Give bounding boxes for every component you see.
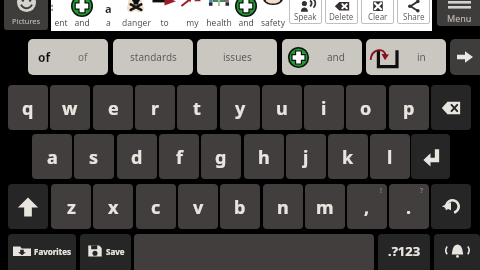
- staticText: b: [234, 195, 246, 220]
- button[interactable]: and: [229, 0, 263, 31]
- button[interactable]: j: [286, 134, 326, 179]
- button[interactable]: r: [135, 85, 175, 130]
- button[interactable]: x: [93, 184, 133, 229]
- button[interactable]: ,: [347, 184, 387, 229]
- staticText: x: [108, 195, 119, 220]
- staticText: of: [78, 50, 88, 64]
- staticText: and: [327, 50, 345, 64]
- staticText: ?: [420, 186, 424, 196]
- button[interactable]: Pictures: [4, 0, 48, 30]
- staticText: safety: [261, 17, 285, 29]
- staticText: i: [321, 96, 327, 121]
- button[interactable]: s: [74, 134, 114, 179]
- button[interactable]: p: [389, 85, 429, 130]
- button[interactable]: k: [328, 134, 368, 179]
- button[interactable]: More predictions: [450, 39, 480, 75]
- staticText: ,: [364, 195, 370, 220]
- button[interactable]: and: [282, 39, 362, 75]
- staticText: v: [193, 195, 204, 220]
- staticText: f: [176, 145, 183, 170]
- button[interactable]: h: [244, 134, 284, 179]
- button[interactable]: Favorites: [8, 234, 76, 270]
- staticText: of: [38, 49, 51, 65]
- staticText: e: [108, 96, 119, 121]
- button[interactable]: .?123: [378, 234, 430, 270]
- staticText: Menu: [447, 12, 472, 24]
- staticText: m: [316, 195, 334, 220]
- staticText: Save: [106, 246, 125, 257]
- button[interactable]: and: [65, 0, 99, 31]
- button[interactable]: standards: [113, 39, 193, 75]
- button[interactable]: t: [177, 85, 217, 130]
- button[interactable]: a: [32, 134, 72, 179]
- button[interactable]: m: [305, 184, 345, 229]
- staticText: Favorites: [34, 246, 71, 257]
- button[interactable]: a: [95, 0, 121, 31]
- button[interactable]: z: [51, 184, 91, 229]
- button[interactable]: u: [262, 85, 302, 130]
- staticText: .: [406, 195, 412, 220]
- staticText: l: [387, 145, 393, 170]
- button[interactable]: health: [202, 0, 236, 31]
- button[interactable]: Share: [397, 0, 430, 24]
- button[interactable]: n: [263, 184, 303, 229]
- staticText: g: [215, 145, 227, 170]
- button[interactable]: f: [159, 134, 199, 179]
- staticText: r: [151, 96, 160, 121]
- staticText: and: [238, 17, 254, 29]
- button[interactable]: o: [346, 85, 386, 130]
- button[interactable]: safety: [256, 0, 290, 31]
- staticText: y: [235, 96, 246, 121]
- button[interactable]: in: [366, 39, 446, 75]
- staticText: p: [403, 96, 415, 121]
- staticText: h: [258, 145, 270, 170]
- button[interactable]: w: [50, 85, 90, 130]
- button[interactable]: Delete: [325, 0, 358, 24]
- button[interactable]: to: [147, 0, 181, 31]
- button[interactable]: g: [201, 134, 241, 179]
- staticText: q: [22, 96, 34, 121]
- button[interactable]: q: [8, 85, 48, 130]
- staticText: d: [131, 145, 143, 170]
- button[interactable]: i: [304, 85, 344, 130]
- button[interactable]: my: [175, 0, 209, 31]
- button[interactable]: e: [93, 85, 133, 130]
- button[interactable]: y: [220, 85, 260, 130]
- button[interactable]: d: [117, 134, 157, 179]
- staticText: Clear: [368, 11, 388, 22]
- staticText: danger: [122, 17, 151, 29]
- staticText: a: [105, 1, 112, 16]
- button[interactable]: ent: [44, 0, 78, 31]
- staticText: in: [417, 50, 426, 64]
- staticText: !: [380, 186, 382, 196]
- button[interactable]: issues: [197, 39, 277, 75]
- button[interactable]: Clear: [361, 0, 394, 24]
- button[interactable]: Sound: [434, 234, 480, 270]
- staticText: c: [151, 195, 161, 220]
- button[interactable]: Menu: [437, 0, 480, 26]
- staticText: s: [89, 145, 99, 170]
- button[interactable]: of: [28, 39, 108, 75]
- button[interactable]: Speak: [289, 0, 322, 24]
- staticText: Delete: [329, 11, 354, 22]
- button[interactable]: Save: [80, 234, 131, 270]
- button[interactable]: l: [370, 134, 410, 179]
- staticText: u: [276, 96, 288, 121]
- button[interactable]: c: [136, 184, 176, 229]
- button[interactable]: .: [389, 184, 429, 229]
- staticText: health: [206, 17, 232, 29]
- staticText: t: [193, 96, 201, 121]
- staticText: Share: [403, 11, 425, 22]
- button[interactable]: danger: [119, 0, 153, 31]
- button[interactable]: Enter: [411, 134, 450, 179]
- staticText: .?123: [388, 242, 421, 260]
- staticText: a: [47, 145, 58, 170]
- button[interactable]: v: [178, 184, 218, 229]
- button[interactable]: b: [220, 184, 260, 229]
- button[interactable]: Undo: [431, 184, 471, 229]
- staticText: k: [342, 145, 354, 170]
- button[interactable]: Backspace: [431, 85, 471, 130]
- button[interactable]: Shift: [8, 184, 48, 229]
- staticText: o: [360, 96, 372, 121]
